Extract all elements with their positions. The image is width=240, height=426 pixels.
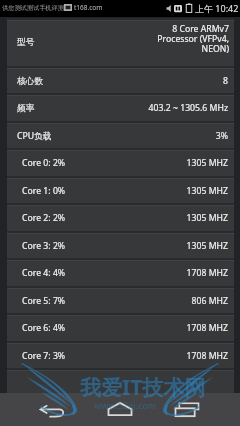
staticText: 我爱IT技术网 [80,373,206,402]
button[interactable]: Home [96,393,144,426]
button[interactable]: Core 5: 7% [7,289,234,313]
staticText: 1708 MHZ [186,267,228,279]
staticText: CPU负载 [17,130,52,142]
staticText: 1708 MHZ [186,322,228,334]
staticText: 1305 MHZ [186,157,228,169]
button[interactable]: Core 4: 4% [7,261,234,285]
staticText: t168.com [74,3,103,12]
staticText: Core 0: 2% [22,157,66,169]
staticText: Core 6: 4% [22,322,66,334]
staticText: Core 5: 7% [22,295,66,307]
staticText: 8 [223,75,228,87]
button[interactable]: Core 6: 4% [7,316,234,340]
button[interactable]: 核心数 [7,69,234,93]
staticText: www.52ijj.com [94,399,157,411]
button[interactable]: Core 2: 2% [7,206,234,230]
staticText: 1305 MHZ [186,212,228,224]
button[interactable]: Core 3: 2% [7,234,234,258]
staticText: 1708 MHZ [186,350,228,362]
staticText: 频率 [17,103,35,114]
staticText: Core 7: 3% [22,350,66,362]
staticText: Core 2: 2% [22,212,66,224]
staticText: 供您测试测试手机评测 [2,4,64,12]
staticText: 上午 10:42 [195,2,239,14]
staticText: 8 Core ARMv7 Processor (VFPv4, NEON) [157,23,229,55]
button[interactable]: 频率 [7,96,234,120]
button[interactable]: Recent apps [163,393,211,426]
staticText: 1305 MHZ [186,240,228,252]
staticText: 3% [215,130,228,142]
staticText: Core 1: 0% [22,185,66,197]
button[interactable]: CPU负载 [7,124,234,148]
button[interactable]: Core 1: 0% [7,179,234,203]
staticText: 型号 [17,37,35,48]
button[interactable]: Core 7: 3% [7,344,234,368]
button[interactable]: Back [28,393,76,426]
staticText: 1305 MHZ [186,185,228,197]
staticText: Core 3: 2% [22,240,66,252]
staticText: 核心数 [17,76,44,87]
staticText: 403.2 ~ 1305.6 MHz [148,102,228,114]
staticText: 806 MHZ [191,295,228,307]
staticText: Core 4: 4% [22,267,66,279]
button[interactable]: Core 0: 2% [7,151,234,175]
button[interactable]: 型号 [7,21,234,67]
